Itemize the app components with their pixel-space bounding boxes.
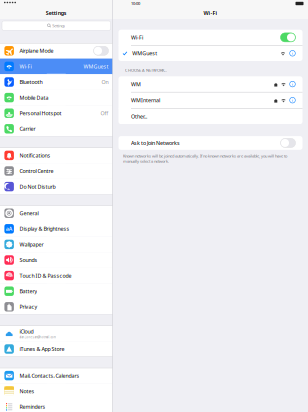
staticText: WMGuest: [83, 63, 108, 70]
staticText: i: [292, 81, 293, 87]
staticText: Wallpaper: [19, 241, 43, 248]
staticText: Touch ID & Passcode: [19, 272, 71, 279]
staticText: Sounds: [19, 256, 37, 264]
staticText: i: [292, 98, 293, 103]
button[interactable]: iTunes & App Store: [0, 341, 112, 357]
button[interactable]: Wallpaper: [0, 237, 112, 252]
staticText: On: [101, 78, 108, 86]
staticText: Wi-Fi: [19, 63, 31, 70]
button[interactable]: Notes: [0, 383, 112, 399]
staticText: Bluetooth: [19, 78, 42, 86]
staticText: Personal Hotspot: [19, 110, 61, 117]
staticText: Wi-Fi: [131, 34, 143, 41]
staticText: Ask to Join Networks: [131, 139, 180, 146]
staticText: Other...: [131, 113, 147, 120]
button[interactable]: Do Not Disturb: [0, 179, 112, 194]
staticText: 10:00: [131, 1, 140, 6]
staticText: WMGuest: [132, 50, 157, 57]
staticText: Carrier: [19, 125, 35, 132]
staticText: Do Not Disturb: [19, 183, 55, 190]
button[interactable]: Notifications: [0, 148, 112, 163]
button[interactable]: Other...: [118, 108, 302, 124]
button[interactable]: Battery: [0, 283, 112, 299]
button[interactable]: iCloud: [0, 326, 112, 341]
staticText: Battery: [19, 288, 37, 295]
button[interactable]: WM: [118, 76, 302, 92]
button[interactable]: Settings: [0, 19, 112, 43]
button[interactable]: Control Centre: [0, 163, 112, 179]
staticText: Control Centre: [19, 167, 53, 175]
button[interactable]: Wi-Fi: [0, 59, 112, 74]
staticText: Wi-Fi: [203, 9, 217, 17]
button[interactable]: Personal Hotspot: [0, 105, 112, 121]
button[interactable]: General: [0, 205, 112, 221]
staticText: iCloud: [19, 328, 33, 335]
button[interactable]: aA: [0, 221, 112, 237]
staticText: WM: [131, 81, 141, 88]
staticText: aA: [6, 225, 13, 232]
button[interactable]: Mail, Contacts, Calendars: [0, 368, 112, 383]
staticText: Reminders: [19, 403, 45, 410]
button[interactable]: Airplane Mode: [0, 43, 112, 59]
staticText: Off: [100, 110, 108, 117]
staticText: Mail, Contacts, Calendars: [19, 372, 79, 379]
button[interactable]: Reminders: [0, 399, 112, 412]
staticText: Notes: [19, 388, 34, 395]
button[interactable]: Privacy: [0, 299, 112, 315]
button[interactable]: Carrier: [0, 121, 112, 137]
staticText: Mobile Data: [19, 94, 48, 101]
staticText: i: [292, 51, 293, 56]
staticText: Known networks will be joined automatica…: [123, 153, 287, 164]
button[interactable]: Mobile Data: [0, 90, 112, 105]
staticText: WMInternal: [131, 97, 160, 104]
button[interactable]: Touch ID & Passcode: [0, 268, 112, 283]
staticText: Display & Brightness: [19, 225, 69, 232]
button[interactable]: WMInternal: [118, 92, 302, 108]
staticText: Settings: [52, 23, 65, 28]
button[interactable]: Sounds: [0, 252, 112, 268]
staticText: iTunes & App Store: [19, 345, 64, 353]
staticText: General: [19, 210, 38, 217]
staticText: Settings: [46, 9, 67, 17]
staticText: alan.jones.am@hotmail.com: [19, 335, 55, 339]
staticText: Privacy: [19, 303, 37, 310]
button[interactable]: WMGuest: [118, 46, 302, 61]
staticText: Airplane Mode: [19, 47, 53, 54]
staticText: CHOOSE A NETWORK...: [125, 67, 167, 73]
button[interactable]: Bluetooth: [0, 74, 112, 90]
staticText: Notifications: [19, 152, 50, 159]
